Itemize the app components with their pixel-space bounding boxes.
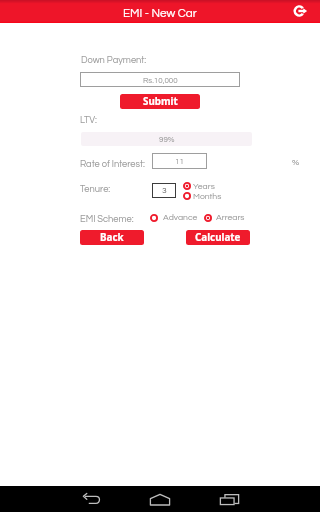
staticText: EMI - New Car (123, 7, 197, 19)
staticText: Tenure: (80, 184, 111, 194)
staticText: Months (193, 192, 222, 201)
button[interactable]: Back (78, 486, 106, 512)
button[interactable]: 3 (152, 183, 176, 198)
button[interactable]: Years (183, 182, 215, 191)
button[interactable]: 11 (152, 153, 207, 169)
button[interactable]: Months (183, 192, 222, 201)
staticText: Rs.10,000 (143, 76, 178, 84)
staticText: EMI Scheme: (80, 214, 134, 224)
staticText: 11 (175, 157, 184, 165)
staticText: Advance (163, 213, 198, 222)
staticText: Back (100, 231, 124, 244)
button[interactable]: Arrears (204, 213, 245, 222)
staticText: Arrears (216, 213, 245, 222)
staticText: 99% (159, 135, 175, 143)
staticText: LTV: (80, 115, 97, 125)
staticText: 3 (162, 186, 167, 195)
button[interactable]: Calculate (186, 230, 250, 245)
button[interactable]: Logout (294, 2, 312, 20)
staticText: Calculate (195, 231, 241, 244)
button[interactable]: Home (146, 486, 174, 512)
button[interactable]: Rs.10,000 (80, 72, 240, 87)
staticText: Submit (143, 95, 178, 108)
button[interactable]: Back (80, 230, 144, 245)
staticText: Rate of Interest: (80, 159, 145, 169)
staticText: Down Payment: (81, 55, 147, 65)
staticText: % (292, 158, 300, 167)
button[interactable]: Submit (120, 94, 200, 109)
staticText: Years (193, 182, 215, 191)
button[interactable]: Recent apps (215, 486, 243, 512)
button[interactable]: Advance (150, 213, 198, 222)
